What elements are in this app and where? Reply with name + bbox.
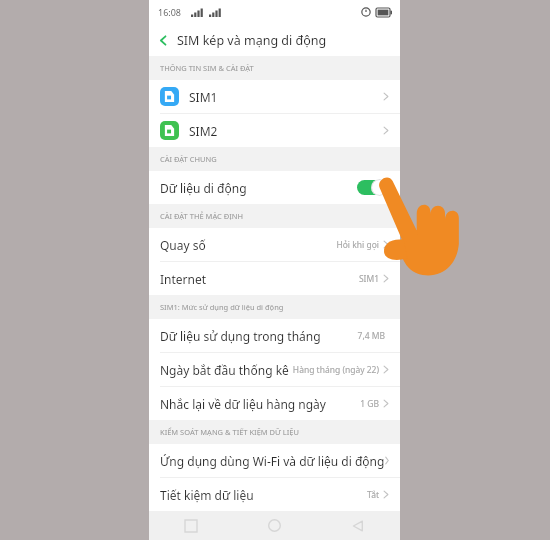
button[interactable]: Dữ liệu di động (149, 171, 400, 204)
button[interactable]: Back (149, 24, 177, 56)
staticText: SIM2 (189, 123, 218, 139)
staticText: Hỏi khi gọi (336, 239, 379, 251)
button[interactable]: SIM1 (149, 80, 400, 113)
staticText: Dữ liệu di động (160, 180, 247, 196)
staticText: SIM1 (358, 273, 379, 285)
staticText: 16:08 (158, 6, 182, 18)
button[interactable]: Ứng dụng dùng Wi-Fi và dữ liệu di động (149, 444, 400, 477)
staticText: Quay số (160, 237, 206, 253)
staticText: Tiết kiệm dữ liệu (160, 487, 254, 503)
staticText: Tắt (367, 489, 379, 501)
staticText: SIM1 (189, 89, 218, 105)
button[interactable]: Recent apps (149, 511, 232, 540)
staticText: Internet (160, 271, 207, 287)
staticText: SIM1: Mức sử dụng dữ liệu di động (160, 302, 284, 312)
staticText: Nhắc lại về dữ liệu hàng ngày (160, 396, 326, 412)
button[interactable]: Home (232, 511, 316, 540)
staticText: THÔNG TIN SIM & CÀI ĐẶT (160, 63, 254, 73)
button[interactable]: Nhắc lại về dữ liệu hàng ngày (149, 387, 400, 420)
staticText: 7,4 MB (357, 330, 385, 342)
button[interactable]: Internet (149, 262, 400, 295)
staticText: Ngày bắt đầu thống kê (160, 362, 289, 378)
staticText: SIM kép và mạng di động (177, 32, 327, 49)
staticText: Hàng tháng (ngày 22) (292, 364, 379, 376)
staticText: Ứng dụng dùng Wi-Fi và dữ liệu di động (160, 453, 385, 469)
button[interactable]: Tiết kiệm dữ liệu (149, 478, 400, 511)
staticText: CÀI ĐẶT CHUNG (160, 154, 217, 164)
staticText: 1 GB (360, 398, 379, 410)
button[interactable]: Ngày bắt đầu thống kê (149, 353, 400, 386)
staticText: Dữ liệu sử dụng trong tháng (160, 328, 321, 344)
staticText: KIỂM SOÁT MẠNG & TIẾT KIỆM DỮ LIỆU (160, 427, 299, 437)
button[interactable]: Quay số (149, 228, 400, 261)
button[interactable]: Dữ liệu sử dụng trong tháng (149, 319, 400, 352)
button[interactable]: SIM2 (149, 114, 400, 147)
staticText: CÀI ĐẶT THẺ MẶC ĐỊNH (160, 211, 243, 221)
